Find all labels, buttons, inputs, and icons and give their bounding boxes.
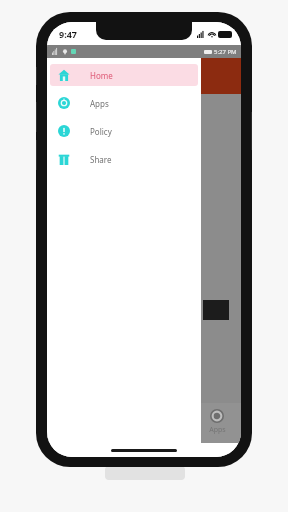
staticText: Apps bbox=[90, 98, 109, 109]
staticText: Apps bbox=[209, 425, 226, 435]
button[interactable]: Share bbox=[50, 148, 198, 170]
staticText: 9:47 bbox=[59, 28, 77, 40]
staticText: Home bbox=[90, 70, 113, 81]
button[interactable]: Policy bbox=[50, 120, 198, 142]
button[interactable]: Home bbox=[50, 64, 198, 86]
staticText: Share bbox=[90, 154, 112, 165]
button[interactable]: Apps bbox=[50, 92, 198, 114]
staticText: Policy bbox=[90, 126, 112, 137]
button[interactable]: Apps tab bbox=[199, 409, 235, 435]
staticText: 5:27 PM bbox=[214, 48, 237, 56]
